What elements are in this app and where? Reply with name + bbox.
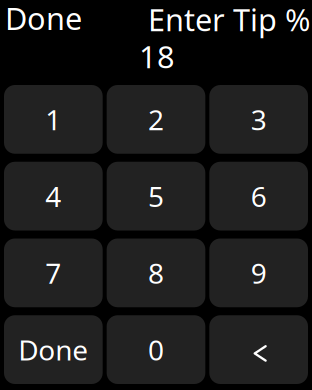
staticText: Done xyxy=(18,331,88,368)
button[interactable]: 3 xyxy=(209,85,308,154)
staticText: 7 xyxy=(45,254,61,291)
staticText: Enter Tip % xyxy=(148,0,310,40)
button[interactable]: 7 xyxy=(4,238,103,307)
staticText: 6 xyxy=(251,177,267,215)
button[interactable]: 0 xyxy=(107,315,205,384)
staticText: 3 xyxy=(251,101,267,138)
staticText: 1 xyxy=(45,101,61,138)
staticText: Done xyxy=(5,0,82,38)
button[interactable]: Done xyxy=(0,0,92,36)
button[interactable]: 8 xyxy=(107,238,205,307)
button[interactable]: 1 xyxy=(4,85,103,154)
staticText: 5 xyxy=(148,177,164,215)
button[interactable]: 6 xyxy=(209,162,308,231)
button[interactable]: 5 xyxy=(107,162,205,231)
staticText: 4 xyxy=(45,177,61,215)
staticText: 0 xyxy=(148,331,164,368)
staticText: 9 xyxy=(251,254,267,291)
button[interactable]: Delete xyxy=(209,315,308,384)
button[interactable]: Done xyxy=(4,315,103,384)
staticText: 18 xyxy=(139,36,175,77)
button[interactable]: 9 xyxy=(209,238,308,307)
staticText: 8 xyxy=(148,254,164,291)
button[interactable]: 2 xyxy=(107,85,205,154)
staticText: 2 xyxy=(148,101,164,138)
button[interactable]: 4 xyxy=(4,162,103,231)
